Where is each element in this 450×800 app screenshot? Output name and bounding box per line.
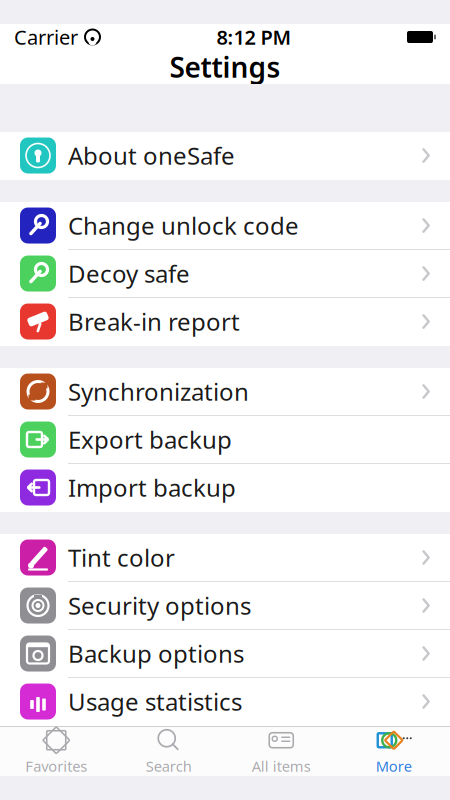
staticText: About oneSafe [68,140,235,171]
button[interactable]: Tint color [0,534,450,582]
staticText: Tint color [68,542,175,573]
button[interactable]: Security options [0,582,450,630]
staticText: Settings [169,48,280,86]
button[interactable]: Break-in report [0,298,450,346]
staticText: Import backup [68,472,236,503]
staticText: Export backup [68,424,232,455]
staticText: Change unlock code [68,210,299,241]
staticText: All items [252,756,311,776]
button[interactable]: All items [225,727,337,776]
button[interactable]: Usage statistics [0,678,450,726]
staticText: 8:12 PM [216,24,291,50]
staticText: Favorites [25,756,87,776]
button[interactable]: Import backup [0,464,450,512]
button[interactable]: About oneSafe [0,132,450,180]
button[interactable]: Favorites [0,727,112,776]
staticText: Carrier [14,24,78,50]
staticText: Backup options [68,638,244,669]
staticText: Break-in report [68,306,240,337]
button[interactable]: More [337,727,450,776]
button[interactable]: Export backup [0,416,450,464]
staticText: Usage statistics [68,686,242,717]
staticText: Search [146,756,192,776]
staticText [78,22,84,52]
button[interactable]: Decoy safe [0,250,450,298]
staticText: Synchronization [68,376,249,407]
staticText: More [376,756,412,776]
button[interactable]: Search [112,727,225,776]
button[interactable]: Synchronization [0,368,450,416]
staticText: Decoy safe [68,258,190,289]
button[interactable]: Change unlock code [0,202,450,250]
button[interactable]: Backup options [0,630,450,678]
staticText: Security options [68,590,251,621]
